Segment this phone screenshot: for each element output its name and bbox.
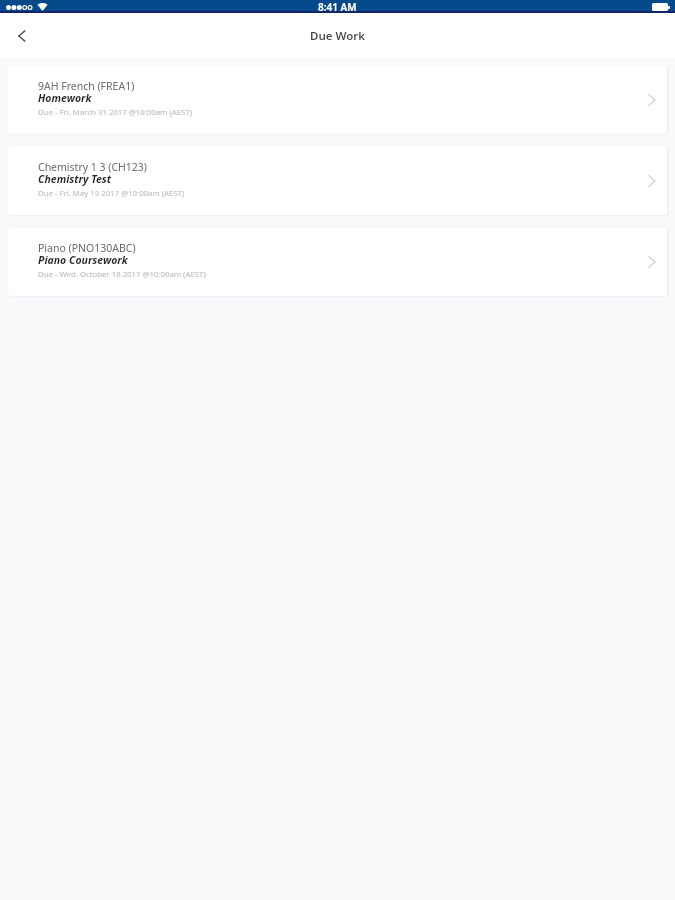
staticText: Homework — [38, 91, 92, 105]
button[interactable]: Chemistry 1 3 (CH123) — [8, 147, 667, 215]
staticText: Chemistry Test — [38, 172, 112, 186]
button[interactable]: Back — [0, 14, 44, 58]
staticText: Due - Wed. October 18 2017 @10:00am (AES… — [38, 269, 206, 280]
button[interactable]: Piano (PNO130ABC) — [8, 228, 667, 296]
staticText: Piano (PNO130ABC) — [38, 241, 136, 255]
staticText: Due Work — [310, 28, 366, 44]
staticText: Due - Fri. May 19 2017 @10:00am (AEST) — [38, 188, 185, 199]
staticText: Piano Coursework — [38, 253, 128, 267]
staticText: 9AH French (FREA1) — [38, 79, 135, 93]
staticText: Due - Fri. March 31 2017 @10:00am (AEST) — [38, 107, 193, 118]
button[interactable]: 9AH French (FREA1) — [8, 66, 667, 134]
staticText: Chemistry 1 3 (CH123) — [38, 160, 148, 174]
staticText: 8:41 AM — [318, 0, 357, 13]
